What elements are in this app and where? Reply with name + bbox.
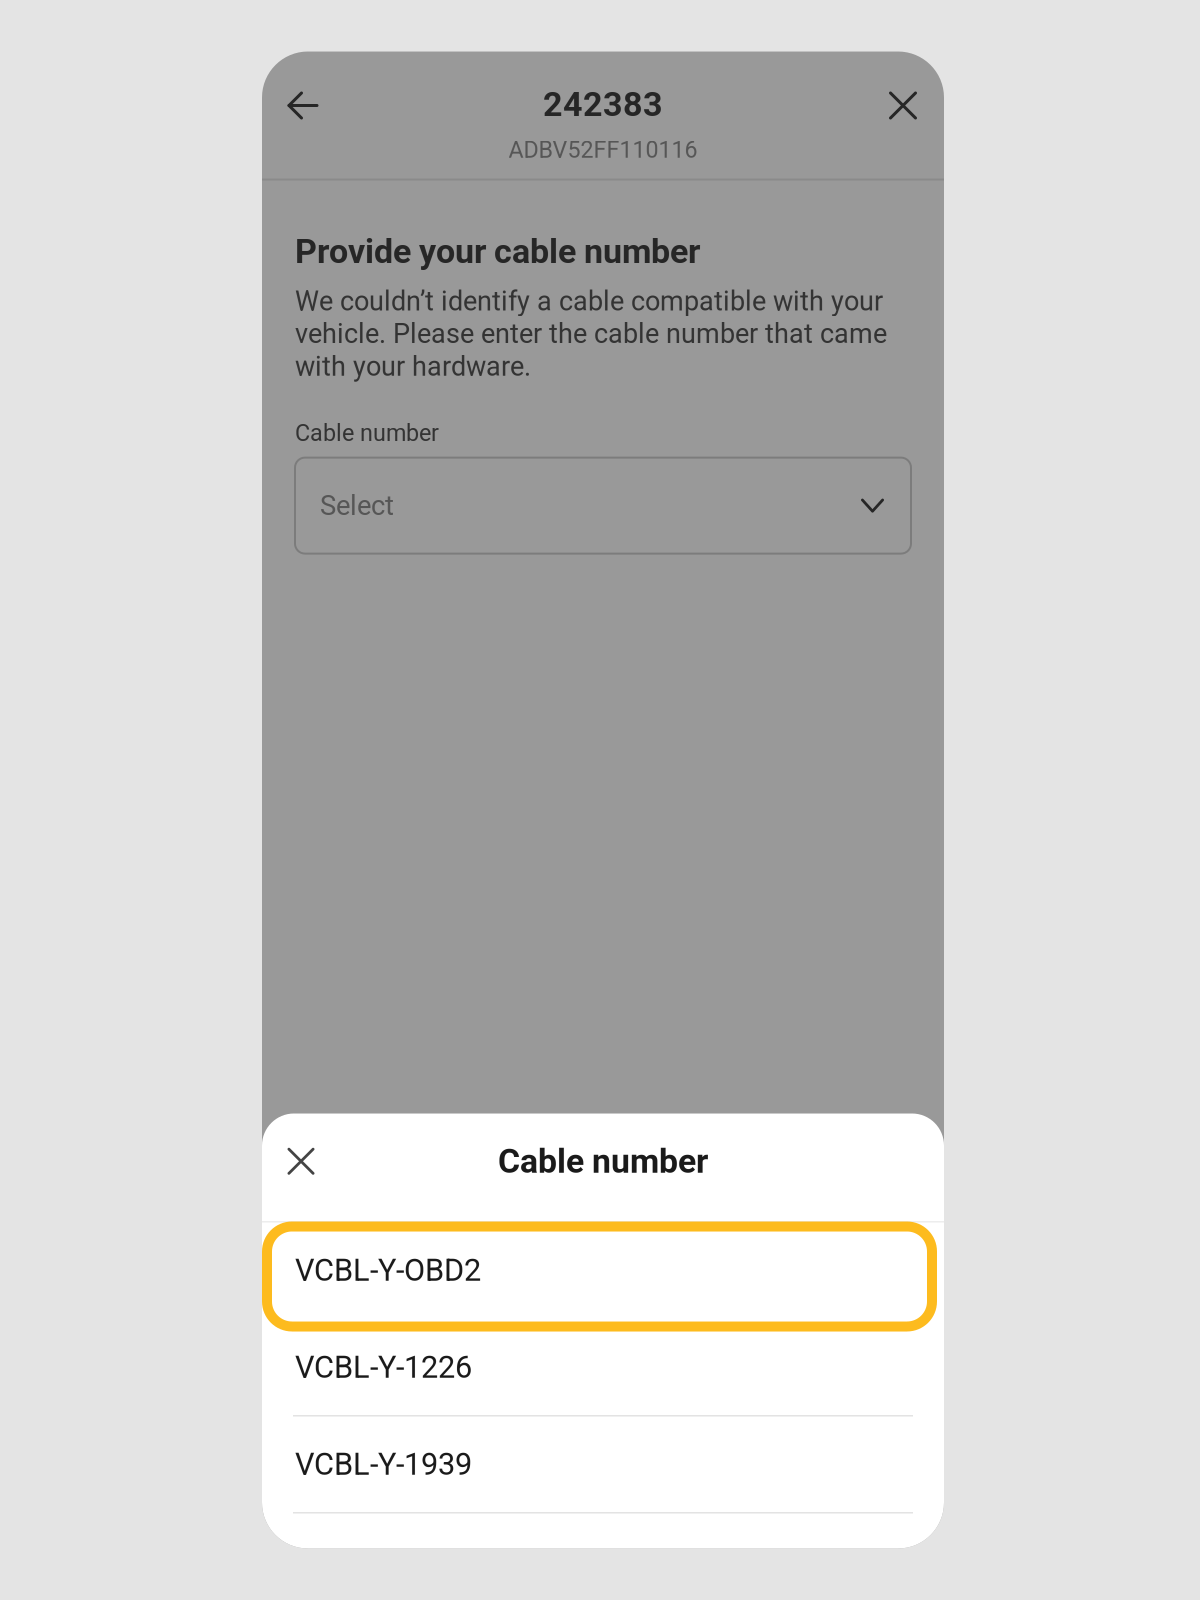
staticText: Provide your cable number — [295, 231, 700, 271]
staticText: Select — [320, 490, 394, 522]
button[interactable]: Back — [267, 69, 339, 141]
staticText: VCBL-Y-OBD2 — [295, 1252, 481, 1288]
button[interactable]: VCBL-Y-1939 — [262, 1416, 944, 1513]
staticText: Cable number — [498, 1141, 708, 1181]
staticText: ADBV52FF110116 — [508, 136, 697, 163]
button[interactable]: Select — [295, 458, 911, 554]
staticText: Cable number — [295, 419, 439, 447]
staticText: We couldn’t identify a cable compatible … — [295, 285, 887, 382]
staticText: VCBL-Y-1939 — [295, 1446, 472, 1482]
button[interactable]: VCBL-Y-1226 — [262, 1319, 944, 1416]
staticText: VCBL-Y-1226 — [295, 1349, 472, 1385]
staticText: 242383 — [543, 84, 663, 124]
button[interactable]: Close — [268, 1128, 334, 1206]
button[interactable]: VCBL-Y-OBD2 — [262, 1222, 944, 1319]
button[interactable]: Close — [867, 69, 939, 141]
